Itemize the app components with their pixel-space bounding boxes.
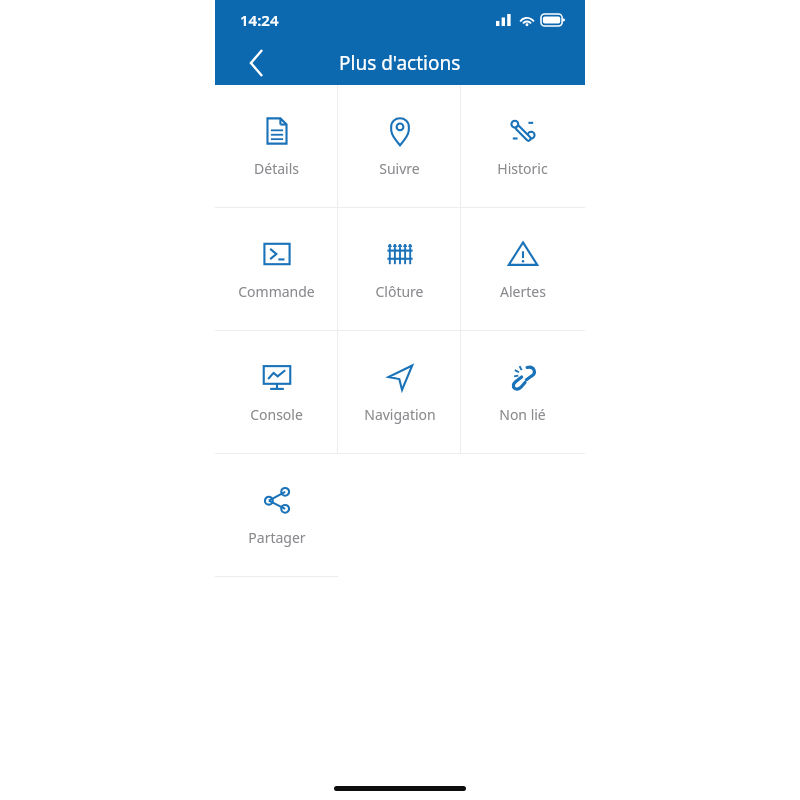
- button[interactable]: Suivre: [338, 85, 461, 207]
- staticText: Commande: [238, 282, 315, 301]
- staticText: Clôture: [375, 282, 424, 301]
- staticText: Navigation: [364, 405, 436, 424]
- button[interactable]: Détails: [215, 85, 338, 207]
- button[interactable]: Console: [215, 331, 338, 453]
- staticText: Console: [250, 405, 303, 424]
- staticText: Alertes: [500, 282, 546, 301]
- button[interactable]: Navigation: [338, 331, 461, 453]
- button[interactable]: Clôture: [338, 208, 461, 330]
- button[interactable]: Back: [237, 43, 277, 83]
- staticText: Historic: [497, 159, 548, 178]
- staticText: 14:24: [240, 10, 279, 30]
- button[interactable]: Alertes: [461, 208, 584, 330]
- button[interactable]: Partager: [215, 454, 338, 576]
- staticText: Partager: [248, 528, 306, 547]
- button[interactable]: Non lié: [461, 331, 584, 453]
- button[interactable]: Commande: [215, 208, 338, 330]
- staticText: Détails: [254, 159, 299, 178]
- staticText: Suivre: [379, 159, 420, 178]
- staticText: Non lié: [499, 405, 546, 424]
- staticText: Plus d'actions: [339, 50, 461, 76]
- button[interactable]: Historic: [461, 85, 584, 207]
